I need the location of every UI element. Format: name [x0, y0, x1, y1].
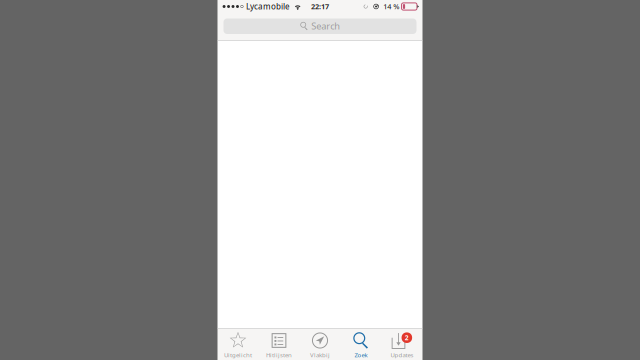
- button[interactable]: Vlakbij: [299, 328, 340, 360]
- button[interactable]: Zoek: [340, 328, 381, 360]
- staticText: 14 %: [383, 1, 399, 11]
- button[interactable]: Hitlijsten: [258, 328, 299, 360]
- staticText: Hitlijsten: [266, 351, 292, 359]
- staticText: Uitgelicht: [224, 351, 252, 359]
- button[interactable]: Search: [223, 18, 416, 34]
- staticText: 22:17: [311, 1, 329, 11]
- staticText: Lycamobile: [246, 1, 290, 12]
- staticText: Search: [311, 20, 340, 32]
- button[interactable]: 2: [381, 328, 422, 360]
- button[interactable]: Uitgelicht: [217, 328, 258, 360]
- staticText: Vlakbij: [310, 351, 330, 359]
- staticText: Zoek: [354, 351, 367, 359]
- staticText: 2: [405, 333, 409, 342]
- staticText: Updates: [390, 351, 413, 359]
